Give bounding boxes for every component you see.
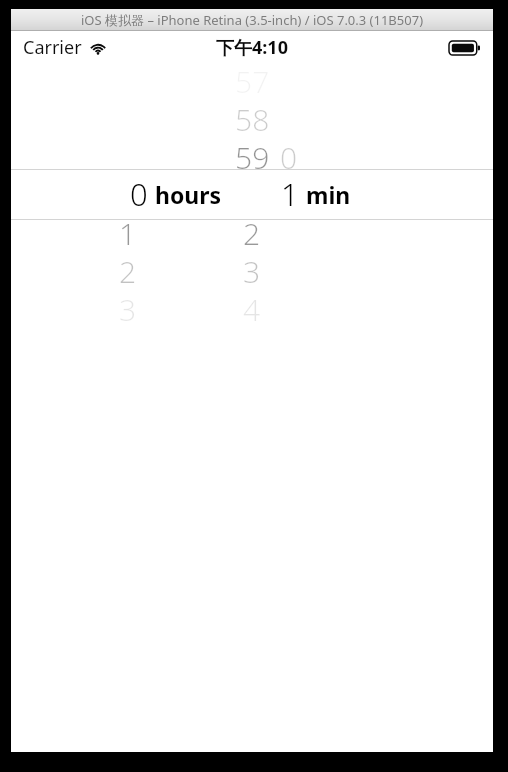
button[interactable]: iOS 模拟器 – iPhone Retina (3.5-inch) / iOS… xyxy=(11,9,493,31)
staticText: 3 xyxy=(119,289,137,327)
staticText: 2 xyxy=(243,213,261,251)
button[interactable]: 1 xyxy=(11,169,493,219)
other: Battery full xyxy=(449,41,480,55)
staticText: 0 xyxy=(130,173,148,215)
staticText: 1 xyxy=(119,213,137,251)
staticText: 下午4:10 xyxy=(216,35,288,60)
staticText: hours xyxy=(155,179,222,210)
staticText: 59 xyxy=(235,137,270,175)
staticText: 4 xyxy=(243,289,261,327)
staticText: 3 xyxy=(243,251,261,289)
staticText: 1 xyxy=(281,173,299,215)
other: Wi-Fi signal xyxy=(89,41,107,54)
button[interactable]: 0 xyxy=(11,169,493,219)
staticText: Carrier xyxy=(23,35,82,60)
staticText: 0 xyxy=(280,137,298,175)
staticText: iOS 模拟器 – iPhone Retina (3.5-inch) / iOS… xyxy=(81,11,424,29)
staticText: 58 xyxy=(235,99,270,137)
staticText: 2 xyxy=(119,251,137,289)
staticText: min xyxy=(306,179,351,210)
